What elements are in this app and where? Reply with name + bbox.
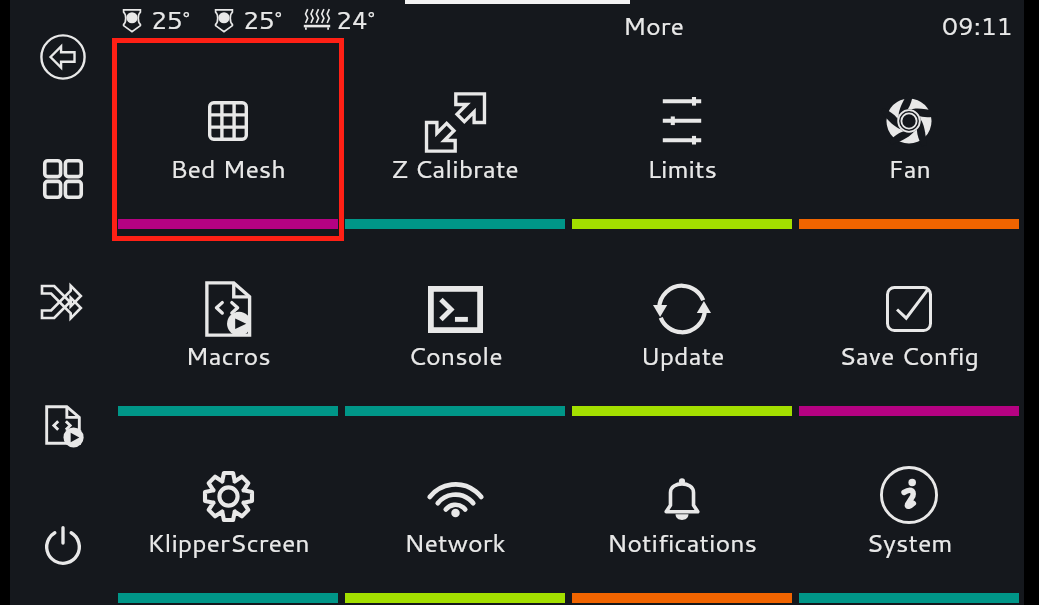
button[interactable]: Console (345, 229, 565, 416)
staticText: Save Config (839, 338, 979, 373)
staticText: 09:11 (942, 8, 1013, 43)
button[interactable]: KlipperScreen (118, 416, 338, 603)
staticText: Console (408, 338, 503, 373)
staticText: Limits (647, 151, 717, 186)
staticText: More (623, 8, 685, 43)
staticText: Notifications (607, 525, 757, 560)
staticText: System (866, 525, 953, 560)
button[interactable]: Back (26, 20, 100, 94)
button[interactable]: Update (572, 229, 792, 416)
staticText: 25° (243, 2, 282, 37)
staticText: KlipperScreen (147, 525, 310, 560)
button[interactable]: Limits (572, 42, 792, 229)
staticText: 25° (151, 2, 190, 37)
button[interactable]: Macros (118, 229, 338, 416)
button[interactable]: Print file (26, 388, 100, 462)
button[interactable]: Shuffle (26, 265, 100, 339)
staticText: 24° (336, 2, 375, 37)
button[interactable]: Save Config (799, 229, 1019, 416)
button[interactable]: Power (26, 509, 100, 583)
button[interactable]: Notifications (572, 416, 792, 603)
button[interactable]: System (799, 416, 1019, 603)
staticText: Bed Mesh (170, 151, 286, 186)
staticText: Update (640, 338, 725, 373)
staticText: Fan (888, 151, 931, 186)
staticText: Network (404, 525, 506, 560)
button[interactable]: Fan (799, 42, 1019, 229)
button[interactable]: Z Calibrate (345, 42, 565, 229)
button[interactable]: Network (345, 416, 565, 603)
button[interactable]: Bed Mesh (118, 42, 338, 229)
staticText: Z Calibrate (391, 151, 519, 186)
button[interactable]: Menu (26, 142, 100, 216)
staticText: Macros (185, 338, 271, 373)
